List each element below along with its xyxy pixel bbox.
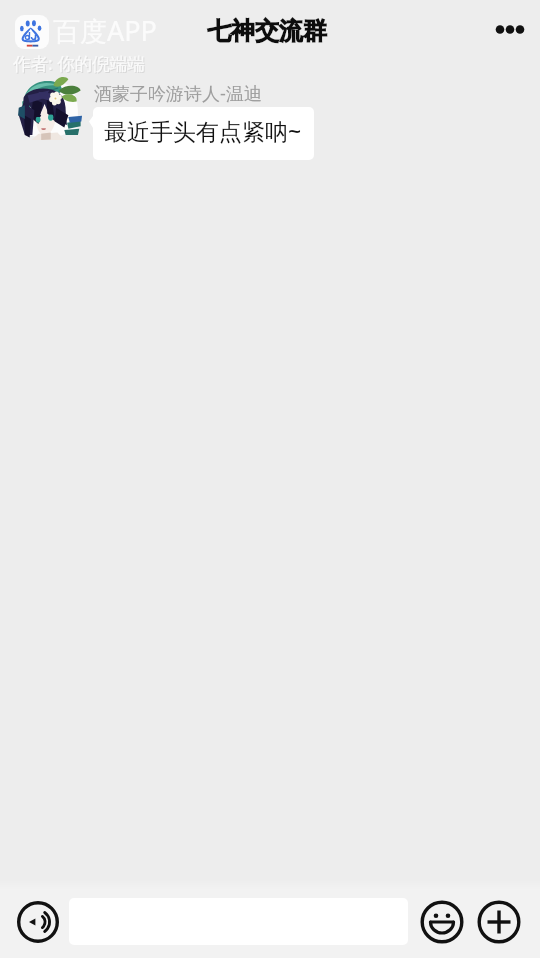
button[interactable]: 最近手头有点紧呐~ [93,107,314,160]
staticText: 酒蒙子吟游诗人-温迪 [94,81,262,106]
staticText: 七神交流群 [207,16,327,46]
staticText: 作者: 你的倪端端 [14,52,146,76]
button[interactable]: More options [488,7,532,51]
button[interactable]: Emoji [421,901,463,943]
staticText: 作者: 你的倪端端 [13,51,145,75]
button[interactable]: More [478,901,520,943]
staticText: 最近手头有点紧呐~ [104,115,302,146]
button[interactable]: Voice input [18,902,58,942]
button[interactable]: 酒蒙子吟游诗人-温迪 avatar [14,78,82,140]
staticText: 百度APP [53,12,157,49]
